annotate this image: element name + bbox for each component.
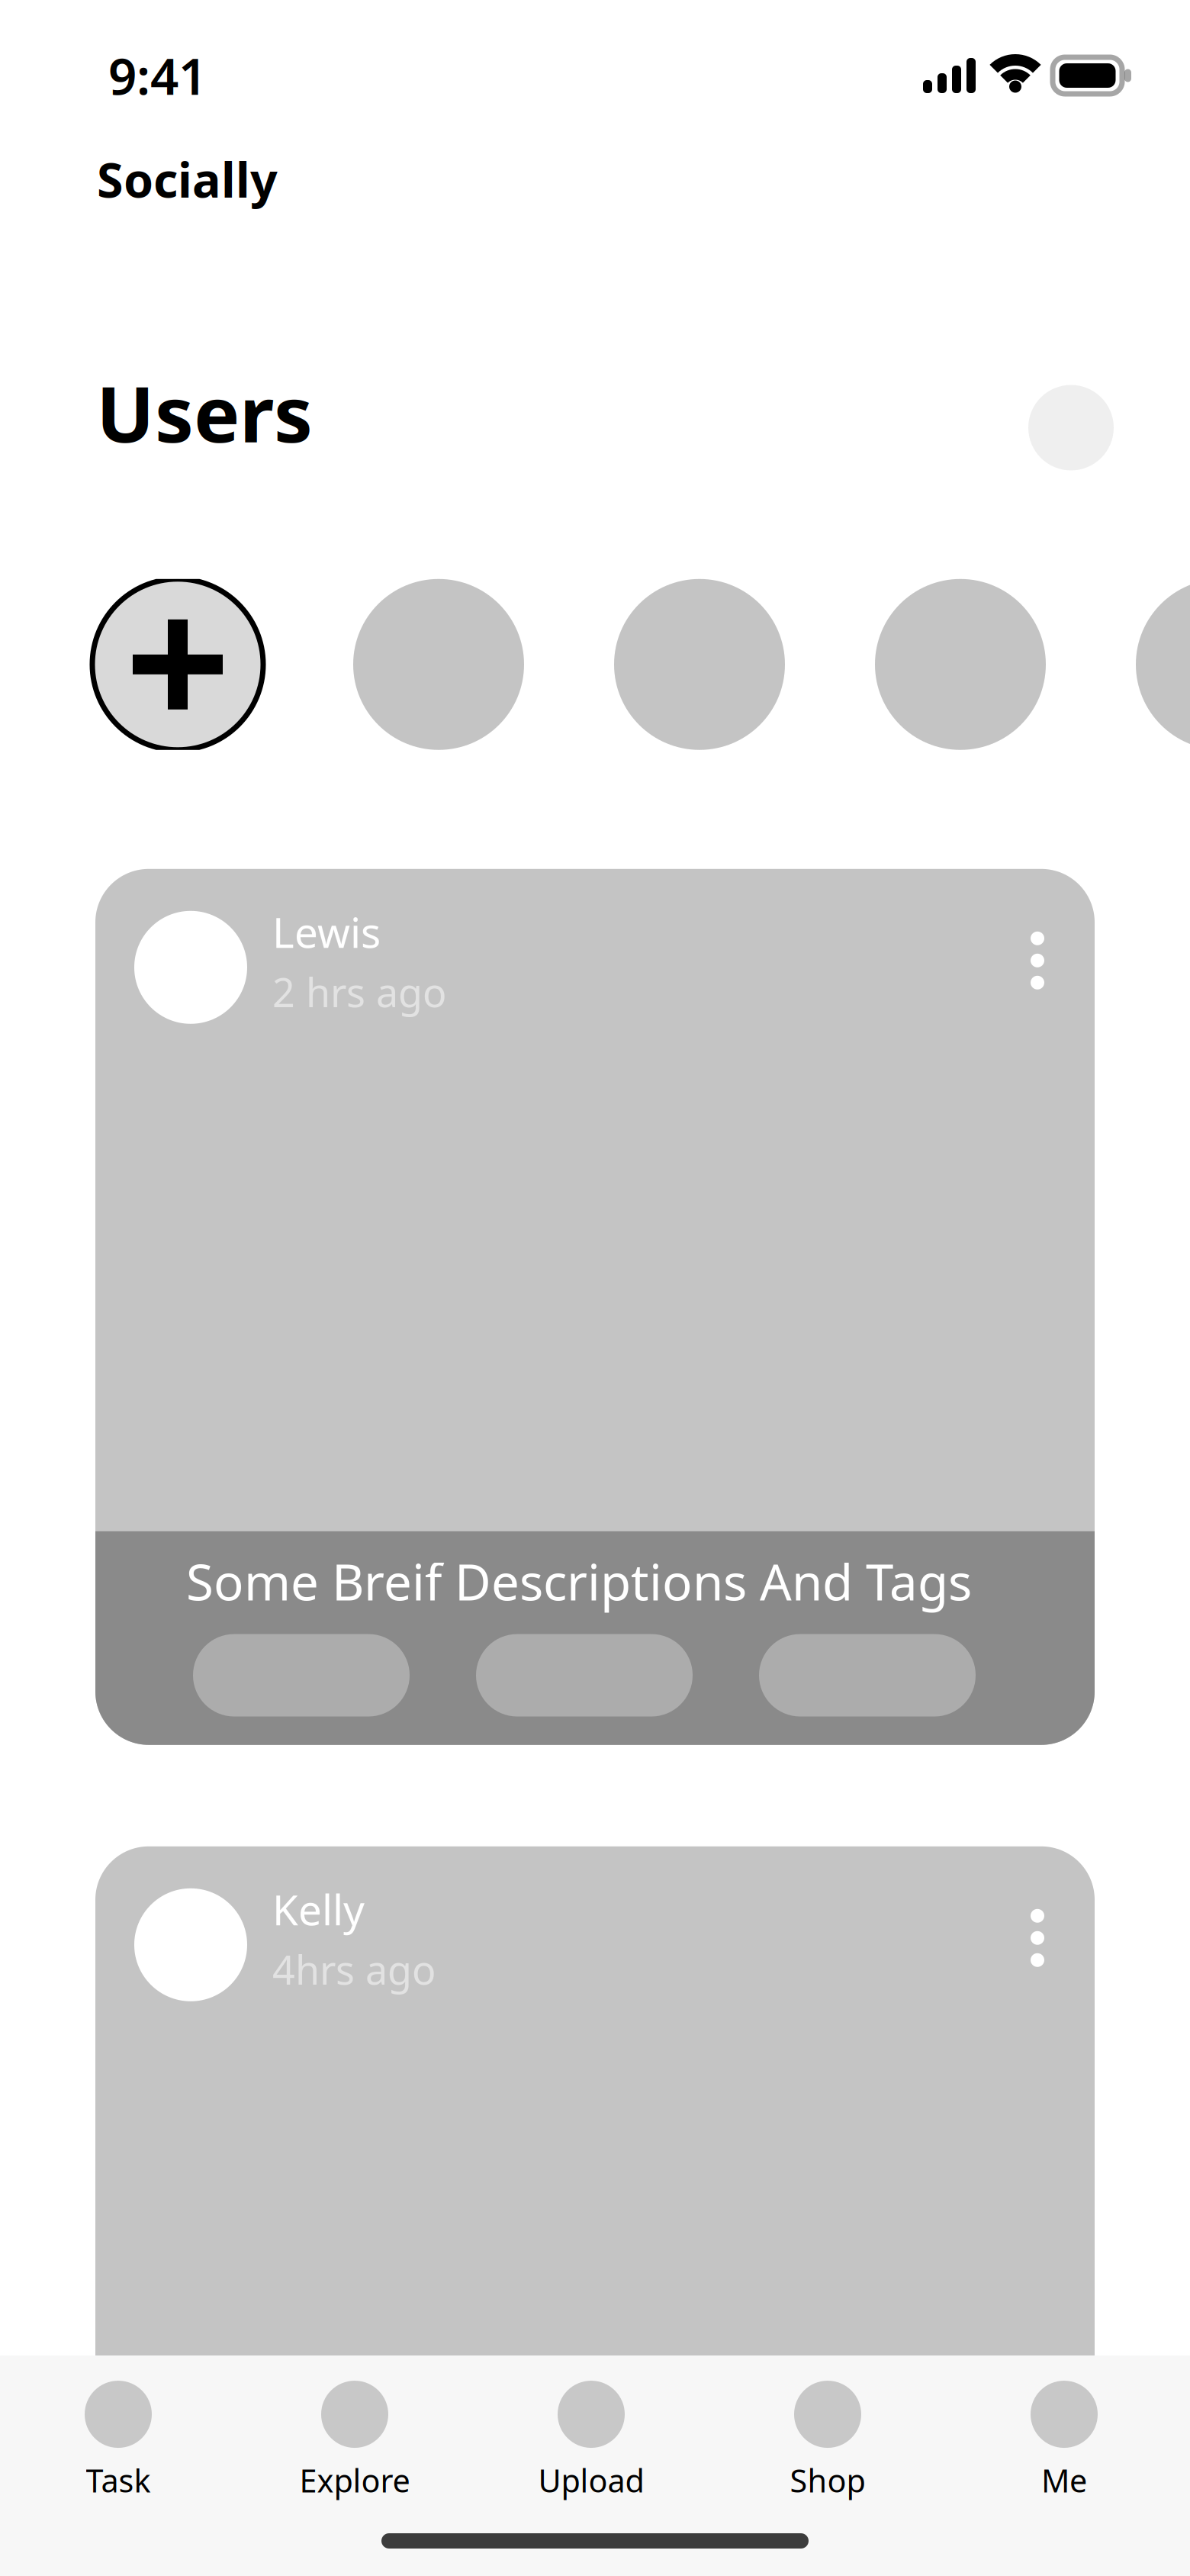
staticText: Users [96, 361, 313, 464]
staticText: Kelly [272, 1881, 365, 1937]
button[interactable]: Story 3 [875, 579, 1046, 750]
staticText: Explore [299, 2459, 410, 2501]
button[interactable]: Tag two [476, 1634, 693, 1716]
button[interactable]: Add story [92, 579, 263, 750]
button[interactable]: Tag three [759, 1634, 976, 1716]
staticText: Socially [97, 147, 278, 211]
button[interactable]: More options [1005, 911, 1082, 1002]
button[interactable]: Upload [507, 2368, 676, 2513]
button[interactable]: More options [1005, 1888, 1082, 1980]
button[interactable]: Task [34, 2368, 203, 2513]
staticText: 2 hrs ago [272, 966, 446, 1018]
staticText: Upload [538, 2459, 644, 2501]
staticText: Me [1041, 2459, 1087, 2501]
staticText: 9:41 [108, 42, 207, 109]
staticText: Lewis [272, 904, 381, 959]
button[interactable]: Profile [1028, 385, 1114, 470]
button[interactable]: Shop [743, 2368, 912, 2513]
staticText: Shop [790, 2459, 865, 2501]
staticText: Task [86, 2459, 151, 2501]
button[interactable]: Story 4 [1136, 579, 1190, 750]
button[interactable]: Explore [270, 2368, 439, 2513]
button[interactable]: Story 1 [353, 579, 524, 750]
button[interactable]: Me [979, 2368, 1149, 2513]
button[interactable]: Story 2 [614, 579, 785, 750]
staticText: 4hrs ago [272, 1943, 436, 1996]
button[interactable]: Tag one [193, 1634, 410, 1716]
staticText: Some Breif Descriptions And Tags [186, 1548, 972, 1614]
